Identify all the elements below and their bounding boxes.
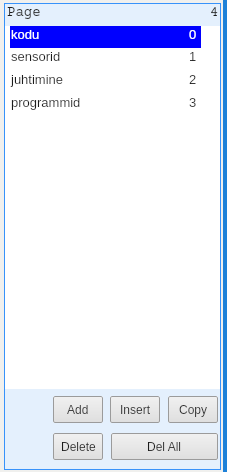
staticText: 0 [189, 27, 197, 42]
button[interactable]: Del All [111, 433, 218, 460]
staticText: 1 [189, 49, 197, 64]
staticText: Del All [147, 440, 182, 453]
staticText: 2 [189, 72, 197, 87]
button[interactable]: Page [7, 5, 41, 21]
button[interactable]: Delete [53, 433, 103, 460]
button[interactable]: sensorid [10, 48, 201, 71]
staticText: Add [67, 403, 89, 416]
button[interactable]: kodu [10, 26, 201, 48]
staticText: kodu [11, 27, 40, 42]
button[interactable]: Copy [168, 396, 218, 423]
button[interactable]: programmid [10, 94, 201, 117]
staticText: Copy [179, 403, 208, 416]
button[interactable]: Add [53, 396, 103, 423]
button[interactable]: juhtimine [10, 71, 201, 94]
button[interactable]: Insert [110, 396, 160, 423]
staticText: Delete [61, 440, 96, 453]
staticText: juhtimine [11, 72, 64, 87]
staticText: programmid [11, 95, 81, 110]
staticText: 4 [210, 5, 219, 21]
staticText: 3 [189, 95, 197, 110]
staticText: sensorid [11, 49, 61, 64]
staticText: Insert [120, 403, 151, 416]
